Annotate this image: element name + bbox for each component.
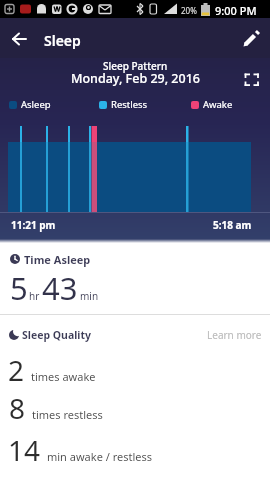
staticText: min awake / restless <box>47 449 153 464</box>
staticText: 5 <box>10 267 28 309</box>
button[interactable]: Time Asleep <box>0 243 270 314</box>
staticText: Monday, Feb 29, 2016 <box>71 70 200 87</box>
staticText: times awake <box>31 369 96 384</box>
button[interactable]: 8 <box>9 389 270 423</box>
staticText: 11:21 pm <box>11 218 56 232</box>
staticText: 5:18 am <box>213 218 252 232</box>
staticText: 20% <box>181 5 197 16</box>
button[interactable]: 2 <box>8 351 270 385</box>
staticText: 9:00 PM <box>215 3 257 18</box>
button[interactable] <box>6 28 34 48</box>
staticText: Sleep Quality <box>22 328 92 342</box>
staticText: Sleep <box>44 31 81 50</box>
staticText: min <box>80 289 99 303</box>
button[interactable] <box>240 26 264 50</box>
button[interactable]: Learn more <box>0 328 262 342</box>
staticText: Awake <box>203 98 233 111</box>
button[interactable]: 14 <box>8 431 270 465</box>
staticText: 2 <box>8 351 25 385</box>
staticText: Sleep Pattern <box>103 59 168 73</box>
staticText: hr <box>29 289 40 303</box>
button[interactable] <box>243 71 261 89</box>
staticText: Restless <box>111 98 148 111</box>
staticText: 43 <box>42 267 78 309</box>
staticText: Learn more <box>207 328 262 342</box>
staticText: Time Asleep <box>24 252 91 267</box>
staticText: 8 <box>9 389 26 423</box>
staticText: times restless <box>32 407 103 422</box>
staticText: 14 <box>8 431 41 465</box>
staticText: Asleep <box>21 98 51 111</box>
